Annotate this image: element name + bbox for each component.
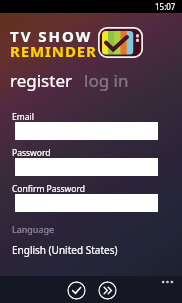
button[interactable]: Next <box>98 281 117 300</box>
staticText: English (United States) <box>12 243 118 257</box>
staticText: Confirm Password <box>12 183 85 195</box>
button[interactable]: register <box>10 69 72 92</box>
button[interactable]: More options <box>160 276 176 287</box>
staticText: Email <box>12 111 34 123</box>
button[interactable]: English (United States) <box>0 243 182 257</box>
staticText: Password <box>12 147 51 159</box>
staticText: 15:07 <box>155 1 176 12</box>
staticText: log in <box>84 69 129 92</box>
staticText: TV SHOW <box>10 26 93 46</box>
button[interactable]: Save <box>67 281 86 300</box>
staticText: Language <box>12 223 55 235</box>
staticText: REMINDER <box>10 41 97 61</box>
button[interactable]: log in <box>84 69 129 92</box>
staticText: register <box>10 69 72 92</box>
